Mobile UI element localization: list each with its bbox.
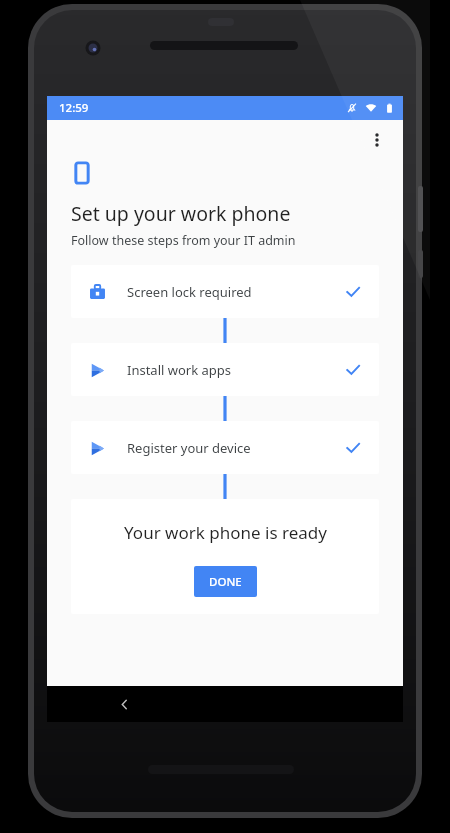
staticText: Set up your work phone	[71, 200, 291, 227]
staticText: DONE	[209, 574, 242, 590]
staticText: 12:59	[59, 100, 89, 116]
staticText: Install work apps	[127, 361, 232, 379]
button[interactable]: DONE	[194, 566, 257, 597]
staticText: Screen lock required	[127, 283, 252, 301]
staticText: Your work phone is ready	[124, 521, 327, 544]
button[interactable]: More options	[362, 125, 392, 155]
button[interactable]: Register your device	[71, 421, 379, 474]
staticText: Register your device	[127, 439, 251, 457]
button[interactable]: Install work apps	[71, 343, 379, 396]
button[interactable]: Screen lock required	[71, 265, 379, 318]
button[interactable]: Back	[109, 689, 139, 719]
staticText: Follow these steps from your IT admin	[71, 232, 296, 249]
